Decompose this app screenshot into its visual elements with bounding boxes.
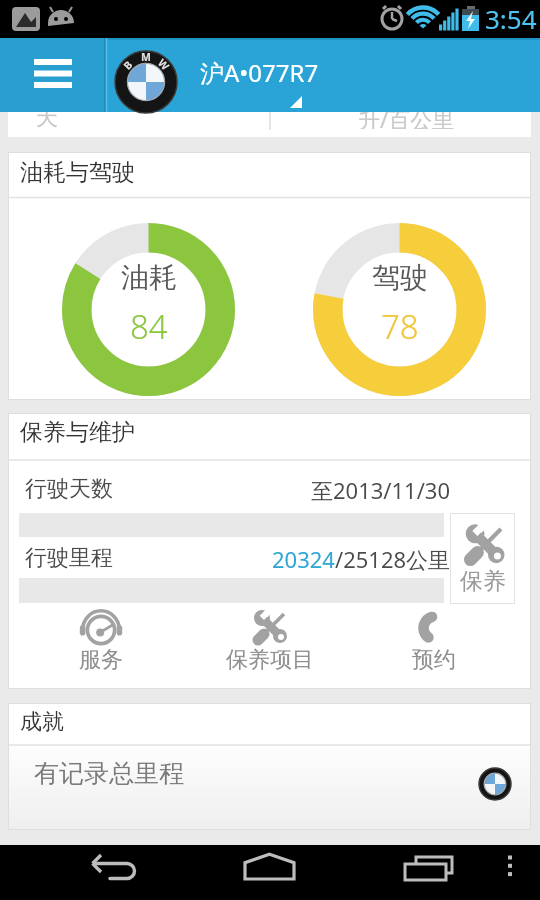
button[interactable]: 保养 [450,513,515,604]
button[interactable] [80,845,160,900]
staticText: 行驶天数 [25,475,113,503]
staticText: 84 [130,304,168,349]
staticText: 有记录总里程 [34,758,184,789]
staticText: 驾驶 [372,260,428,295]
button[interactable] [0,38,106,112]
staticText: 保养 [460,567,506,596]
staticText: 预约 [412,646,456,674]
staticText: 至2013/11/30 [311,475,451,505]
button[interactable] [230,845,310,900]
staticText: 保养与维护 [20,418,135,447]
staticText: 成就 [20,708,64,736]
staticText: 服务 [79,646,123,674]
staticText: 天 [36,104,58,129]
staticText: /25128公里 [335,544,451,574]
staticText: 油耗与驾驶 [20,158,135,187]
button[interactable]: 服务 [51,608,151,680]
staticText: 沪A•077R7 [200,56,319,89]
button[interactable]: 有记录总里程 [9,746,530,829]
staticText: 3:54 [485,1,537,36]
staticText: 78 [381,304,419,349]
staticText: 升/百公里 [358,104,455,129]
button[interactable] [380,845,460,900]
button[interactable]: 驾驶 [313,223,486,396]
button[interactable]: 保养项目 [220,608,320,680]
staticText: 油耗 [121,260,177,295]
button[interactable]: 油耗 [62,223,235,396]
staticText: 行驶里程 [25,544,113,572]
staticText: 20324 [272,544,335,574]
button[interactable]: 预约 [384,608,484,680]
button[interactable]: 沪A•077R7 [186,38,316,112]
staticText: 保养项目 [226,646,314,674]
